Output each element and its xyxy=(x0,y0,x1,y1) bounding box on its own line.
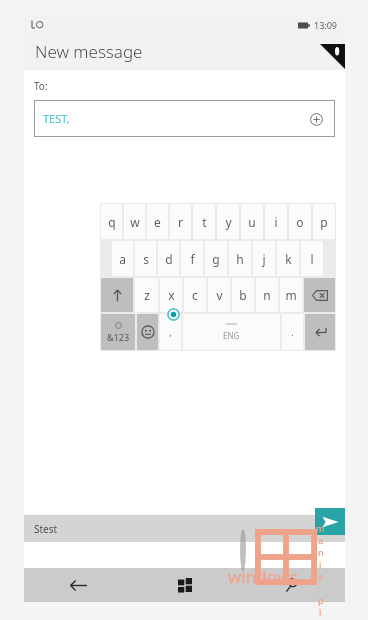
button[interactable]: p xyxy=(313,204,335,239)
staticText: , xyxy=(169,326,172,338)
button[interactable]: j xyxy=(253,241,275,276)
button[interactable]: d xyxy=(158,241,179,276)
staticText: i xyxy=(274,214,278,230)
button[interactable]: o xyxy=(289,204,311,239)
staticText: a xyxy=(318,570,324,582)
staticText: g xyxy=(212,251,220,267)
staticText: x xyxy=(168,287,175,303)
button[interactable]: s xyxy=(135,241,156,276)
staticText: a xyxy=(119,251,126,267)
staticText: d xyxy=(165,251,173,267)
button[interactable]: w xyxy=(124,204,145,239)
button[interactable]: Backspace xyxy=(304,278,335,312)
button[interactable]: c xyxy=(184,278,206,312)
button[interactable]: l xyxy=(301,241,323,276)
button[interactable]: g xyxy=(205,241,227,276)
staticText: f xyxy=(190,251,195,267)
button[interactable]: a xyxy=(112,241,133,276)
staticText: a xyxy=(318,534,324,546)
staticText: e xyxy=(154,214,161,230)
staticText: v xyxy=(216,287,223,303)
button[interactable]: , xyxy=(160,314,181,350)
button[interactable]: h xyxy=(229,241,251,276)
button[interactable]: . xyxy=(282,314,303,350)
button[interactable]: Enter xyxy=(305,314,335,350)
button[interactable]: v xyxy=(208,278,230,312)
button[interactable]: n xyxy=(256,278,278,312)
staticText: k xyxy=(285,251,292,267)
button[interactable]: Symbols xyxy=(101,314,135,350)
staticText: 13:09 xyxy=(314,19,338,31)
staticText: TEST, xyxy=(43,111,70,126)
staticText: h xyxy=(236,251,244,267)
button[interactable]: e xyxy=(147,204,168,239)
staticText: q xyxy=(108,214,116,230)
button[interactable]: f xyxy=(181,241,203,276)
button[interactable]: Send xyxy=(315,508,345,535)
button[interactable]: Search xyxy=(238,568,345,602)
staticText: New message xyxy=(35,40,143,63)
button[interactable]: r xyxy=(170,204,191,239)
staticText: To: xyxy=(34,79,48,93)
button[interactable]: u xyxy=(241,204,263,239)
button[interactable]: x xyxy=(160,278,182,312)
button[interactable]: Back xyxy=(24,568,131,602)
button[interactable]: Emoji xyxy=(137,314,158,350)
staticText: o xyxy=(296,214,304,230)
staticText: b xyxy=(239,287,247,303)
button[interactable]: Start xyxy=(131,568,238,602)
staticText: c xyxy=(192,287,198,303)
button[interactable]: t xyxy=(193,204,215,239)
button[interactable]: Shift xyxy=(101,278,133,312)
staticText: r xyxy=(178,214,183,230)
staticText: &123 xyxy=(107,331,130,343)
staticText: i xyxy=(319,558,322,570)
staticText: l xyxy=(310,251,314,267)
staticText: ENG xyxy=(223,330,240,341)
button[interactable]: i xyxy=(265,204,287,239)
staticText: y xyxy=(225,214,232,230)
staticText: . xyxy=(291,326,294,338)
button[interactable]: q xyxy=(101,204,122,239)
button[interactable]: y xyxy=(217,204,239,239)
staticText: n xyxy=(263,287,271,303)
button[interactable]: b xyxy=(232,278,254,312)
staticText: u xyxy=(248,214,256,230)
button[interactable]: Stest xyxy=(24,515,345,542)
staticText: Stest xyxy=(34,522,58,536)
staticText: t xyxy=(202,214,207,230)
staticText: j xyxy=(262,251,266,267)
staticText: windows xyxy=(228,565,299,588)
button[interactable]: k xyxy=(277,241,299,276)
staticText: m xyxy=(316,522,325,534)
staticText: p xyxy=(318,594,324,606)
button[interactable]: m xyxy=(280,278,302,312)
button[interactable]: TEST, xyxy=(34,100,335,137)
staticText: w xyxy=(130,214,140,230)
staticText: s xyxy=(143,251,149,267)
staticText: p xyxy=(320,214,328,230)
staticText: z xyxy=(144,287,150,303)
staticText: n xyxy=(318,546,324,558)
button[interactable]: Space xyxy=(183,314,280,350)
button[interactable]: z xyxy=(135,278,158,312)
staticText: l xyxy=(319,606,322,618)
staticText: m xyxy=(285,287,297,303)
button[interactable]: Add recipient xyxy=(306,109,326,129)
staticText: . xyxy=(319,582,322,594)
